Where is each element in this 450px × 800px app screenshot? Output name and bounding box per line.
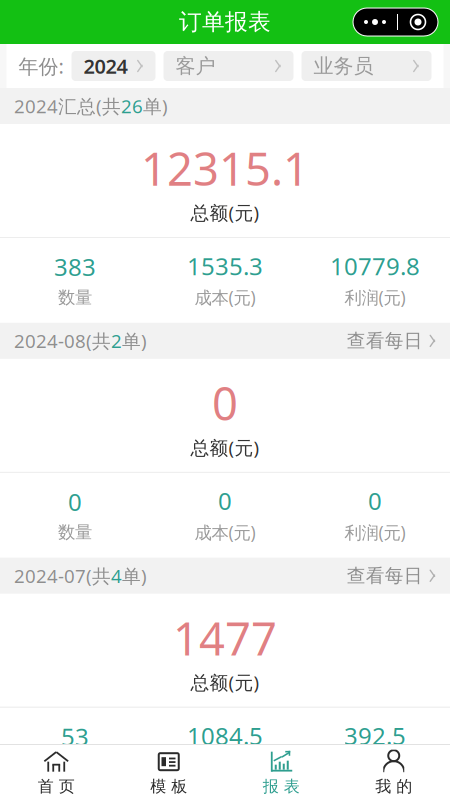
button[interactable]: More	[353, 8, 438, 36]
staticText: 2024	[83, 53, 127, 79]
button[interactable]: 2024-07(共	[0, 558, 450, 594]
staticText: 单)	[143, 94, 168, 118]
staticText: 客户	[175, 54, 215, 78]
staticText: 总额(元)	[190, 200, 259, 225]
staticText: 1084.5	[187, 720, 263, 752]
staticText: 1535.3	[187, 250, 263, 282]
staticText: 模 板	[150, 777, 187, 796]
staticText: 12315.1	[141, 138, 309, 198]
staticText: 报 表	[263, 777, 300, 796]
staticText: 0	[218, 485, 232, 517]
button[interactable]: 我 的	[337, 745, 450, 800]
staticText: 2	[111, 328, 122, 353]
staticText: 2024汇总(共	[14, 94, 121, 118]
staticText: 0	[368, 485, 382, 517]
staticText: 383	[54, 251, 96, 283]
staticText: 0	[68, 486, 82, 518]
staticText: 业务员	[313, 54, 373, 78]
staticText: 单)	[122, 328, 147, 353]
staticText: 总额(元)	[190, 435, 259, 460]
staticText: 年份:	[18, 53, 63, 79]
staticText: 首 页	[38, 777, 75, 796]
staticText: 成本(元)	[194, 521, 255, 544]
staticText: 利润(元)	[344, 756, 405, 779]
staticText: 查看每日	[347, 564, 423, 587]
button[interactable]: 模 板	[112, 745, 225, 800]
button[interactable]: 首 页	[0, 745, 112, 800]
staticText: 2024-08(共	[14, 328, 111, 353]
staticText: 1477	[173, 608, 277, 668]
button[interactable]: 2024-08(共	[0, 323, 450, 359]
staticText: 成本(元)	[194, 286, 255, 309]
staticText: 我 的	[375, 777, 412, 796]
staticText: 总额(元)	[190, 670, 259, 695]
staticText: 查看每日	[347, 329, 423, 352]
staticText: 0	[212, 373, 238, 433]
staticText: 数量	[58, 756, 92, 778]
staticText: 订单报表	[179, 8, 271, 36]
staticText: 392.5	[344, 720, 406, 752]
staticText: 利润(元)	[344, 286, 405, 309]
staticText: 数量	[58, 287, 92, 308]
button[interactable]: 报 表	[225, 745, 337, 800]
staticText: 4	[111, 563, 122, 588]
staticText: 单)	[122, 563, 147, 588]
button[interactable]: 2024-04(共	[0, 793, 450, 800]
button[interactable]: 业务员	[301, 51, 431, 81]
button[interactable]: 客户	[163, 51, 293, 81]
staticText: 10779.8	[330, 250, 420, 282]
staticText: 利润(元)	[344, 521, 405, 544]
staticText: 数量	[58, 522, 92, 543]
staticText: 2024-07(共	[14, 563, 111, 588]
staticText: 26	[121, 94, 143, 118]
button[interactable]: 2024	[71, 51, 155, 81]
staticText: 53	[61, 721, 89, 752]
